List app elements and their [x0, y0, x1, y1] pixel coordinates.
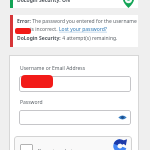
button[interactable]: [19, 76, 131, 92]
button[interactable]: I'm not a robot: [14, 136, 132, 150]
button[interactable]: Lost your password?: [59, 26, 108, 33]
button[interactable]: Show password: [19, 110, 131, 125]
staticText: I'm not a robot: [38, 148, 73, 150]
staticText: Password: [20, 99, 43, 106]
button[interactable]: Show password: [117, 112, 128, 123]
staticText: 4 attempt(s) remaining.: [61, 35, 118, 42]
staticText: is incorrect.: [29, 26, 59, 33]
staticText: The password you entered for the usernam…: [31, 18, 137, 25]
staticText: DoLogin Security: ON: [17, 0, 70, 4]
staticText: Username or Email Address: [20, 65, 86, 72]
other: Security badge: [123, 0, 134, 8]
staticText: DoLogin Security:: [17, 35, 61, 42]
button[interactable]: DoLogin Security: ON: [10, 0, 138, 8]
staticText: Error:: [17, 18, 31, 25]
